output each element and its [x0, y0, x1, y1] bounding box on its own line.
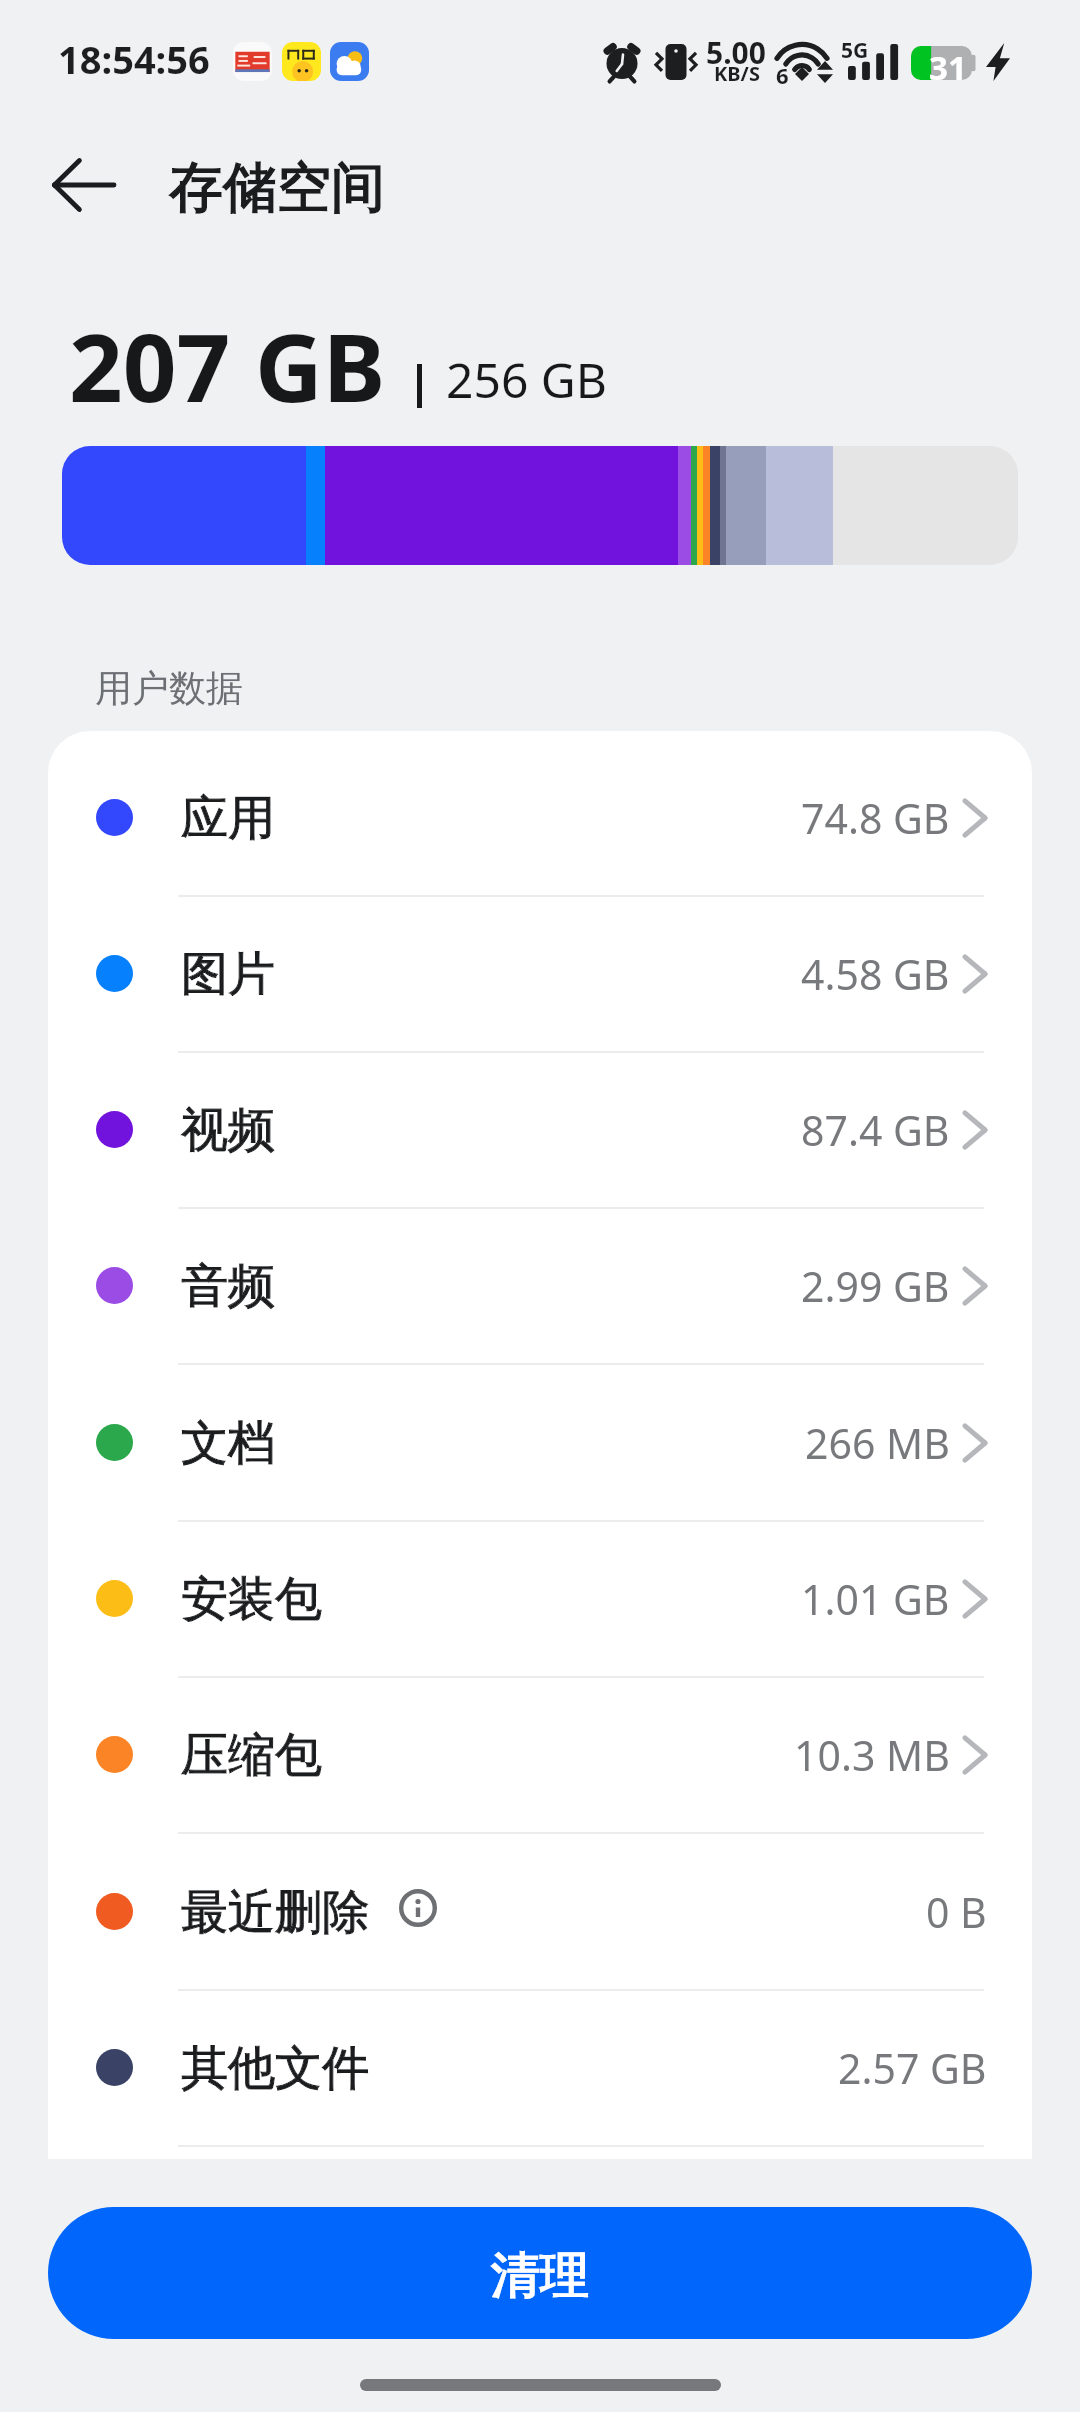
staticText: 压缩包 [181, 1726, 322, 1785]
staticText: 5.00 [706, 32, 766, 73]
staticText: 207 GB [69, 302, 386, 430]
staticText: 31 [929, 45, 967, 90]
staticText: 清理 [491, 2245, 589, 2307]
staticText: 4.58 GB [801, 946, 950, 1002]
staticText: 10.3 MB [794, 1727, 950, 1783]
staticText: 2.99 GB [801, 1258, 950, 1314]
button[interactable]: 图片 [48, 895, 1032, 1052]
staticText: 音频 [181, 1257, 275, 1316]
button[interactable]: 音频 [48, 1207, 1032, 1364]
staticText: 安装包 [181, 1570, 322, 1629]
button[interactable]: 应用 [48, 739, 1032, 896]
staticText: 安装包 [181, 1570, 322, 1629]
staticText: 清理 [491, 2245, 589, 2307]
staticText: 18:54:56 [58, 33, 210, 85]
staticText: 视频 [181, 1101, 275, 1160]
button[interactable]: 压缩包 [48, 1676, 1032, 1833]
button[interactable]: 最近删除 [48, 1833, 1032, 1990]
button[interactable]: 其他文件 [48, 1989, 1032, 2146]
button[interactable]: 文档 [48, 1364, 1032, 1521]
staticText: 文档 [181, 1414, 275, 1473]
button[interactable]: 视频 [48, 1051, 1032, 1208]
staticText: 2.57 GB [838, 2040, 987, 2096]
button[interactable]: 安装包 [48, 1520, 1032, 1677]
staticText: 5G [841, 36, 869, 65]
staticText: 压缩包 [181, 1726, 322, 1785]
staticText: 0 B [926, 1884, 987, 1940]
staticText: 用户数据 [95, 665, 243, 712]
staticText: 图片 [181, 945, 275, 1004]
staticText: 87.4 GB [801, 1102, 950, 1158]
staticText: 其他文件 [181, 2039, 369, 2098]
staticText: 6 [776, 60, 789, 90]
staticText: 应用 [181, 789, 275, 848]
staticText: 74.8 GB [801, 790, 950, 846]
staticText: 最近删除 [181, 1883, 369, 1942]
staticText: 音频 [181, 1257, 275, 1316]
staticText: 存储空间 [169, 154, 385, 222]
staticText: 266 MB [805, 1415, 950, 1471]
staticText: 图片 [181, 945, 275, 1004]
button[interactable]: Back [29, 130, 139, 240]
staticText: 256 GB [446, 347, 607, 412]
button[interactable]: 清理 [48, 2207, 1032, 2339]
staticText: 其他文件 [181, 2039, 369, 2098]
staticText: 最近删除 [181, 1883, 369, 1942]
staticText: 应用 [181, 789, 275, 848]
staticText: 1.01 GB [801, 1571, 950, 1627]
staticText: 存储空间 [169, 154, 385, 222]
staticText: 视频 [181, 1101, 275, 1160]
staticText: 文档 [181, 1414, 275, 1473]
staticText: KB/S [714, 60, 760, 87]
